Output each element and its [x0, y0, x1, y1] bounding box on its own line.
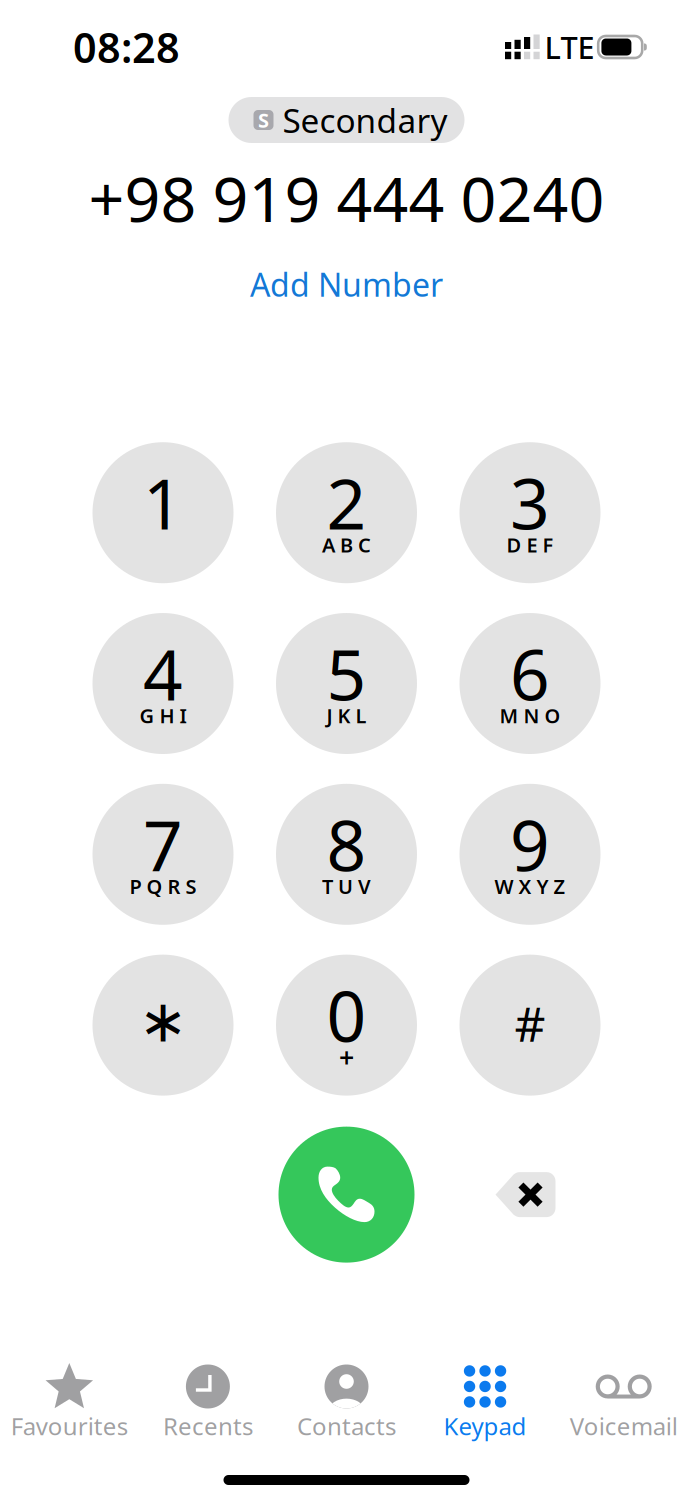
staticText: 08:28 — [73, 20, 180, 74]
staticText: Secondary — [282, 98, 447, 142]
button[interactable]: 7 — [92, 784, 233, 925]
staticText: 0 — [326, 969, 366, 1061]
staticText: 3 — [510, 457, 550, 549]
staticText: Add Number — [250, 263, 443, 305]
button[interactable]: Contacts — [277, 1347, 416, 1454]
staticText: 6 — [510, 627, 550, 720]
button[interactable]: Voicemail — [554, 1347, 693, 1454]
button[interactable]: Keypad — [416, 1347, 554, 1454]
staticText: 4 — [143, 627, 183, 720]
staticText: G H I — [139, 702, 186, 729]
staticText: 7 — [143, 798, 183, 890]
staticText: M N O — [499, 702, 560, 729]
button[interactable]: ∗ — [92, 955, 233, 1096]
button[interactable]: 8 — [276, 784, 417, 925]
staticText: A B C — [322, 531, 371, 558]
staticText: + — [339, 1039, 354, 1075]
staticText: LTE — [545, 27, 595, 67]
staticText: W X Y Z — [494, 873, 565, 900]
button[interactable]: 6 — [459, 613, 600, 754]
button[interactable]: Favourites — [0, 1347, 139, 1454]
staticText: 9 — [510, 798, 550, 890]
staticText: 5 — [326, 627, 366, 720]
staticText: Keypad — [444, 1410, 527, 1442]
staticText: +98 919 444 0240 — [88, 156, 604, 239]
staticText: 1 — [143, 457, 183, 549]
staticText: Favourites — [11, 1410, 128, 1442]
staticText: P Q R S — [129, 873, 196, 900]
staticText: T U V — [322, 873, 371, 900]
button[interactable]: 4 — [92, 613, 233, 754]
button[interactable]: Call — [278, 1127, 414, 1263]
staticText: Voicemail — [570, 1410, 678, 1442]
button[interactable]: 0 — [276, 955, 417, 1096]
button[interactable]: S — [228, 97, 464, 143]
button[interactable]: 9 — [459, 784, 600, 925]
staticText: Recents — [163, 1410, 253, 1442]
staticText: S — [258, 107, 269, 133]
button[interactable]: Delete — [495, 1172, 555, 1217]
staticText: 8 — [326, 798, 366, 890]
staticText: # — [514, 991, 545, 1055]
button[interactable]: 3 — [459, 442, 600, 583]
button[interactable]: 1 — [92, 442, 233, 583]
staticText: ∗ — [138, 988, 187, 1054]
button[interactable]: 5 — [276, 613, 417, 754]
button[interactable]: Add Number — [0, 261, 693, 307]
staticText: J K L — [326, 702, 366, 729]
button[interactable]: Recents — [139, 1347, 277, 1454]
staticText: Contacts — [297, 1410, 396, 1442]
staticText: 2 — [326, 457, 366, 549]
button[interactable]: 2 — [276, 442, 417, 583]
staticText: D E F — [506, 531, 553, 558]
button[interactable]: # — [459, 955, 600, 1096]
